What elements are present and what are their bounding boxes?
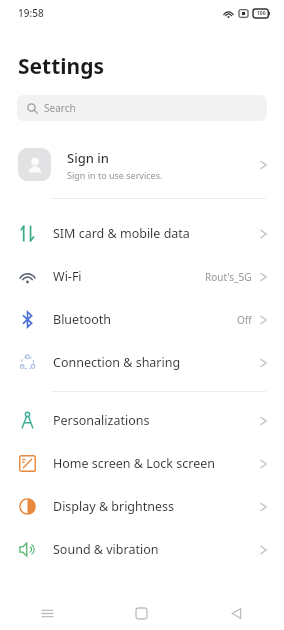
staticText: Personalizations xyxy=(53,412,259,429)
staticText: SIM card & mobile data xyxy=(53,225,259,242)
staticText: 100 xyxy=(257,10,266,17)
button[interactable]: Recent apps xyxy=(0,596,94,630)
staticText: Sound & vibration xyxy=(53,541,259,558)
staticText: Sign in xyxy=(67,149,109,167)
staticText: Wi-Fi xyxy=(53,268,205,285)
button[interactable]: Wi-Fi xyxy=(0,255,284,298)
button[interactable]: Connection & sharing xyxy=(0,341,284,384)
staticText: Bluetooth xyxy=(53,311,237,328)
button[interactable]: Display & brightness xyxy=(0,485,284,528)
staticText: Search xyxy=(44,101,76,115)
button[interactable]: Personalizations xyxy=(0,399,284,442)
button[interactable]: Search xyxy=(17,95,267,121)
staticText: Rout's_5G xyxy=(205,270,252,284)
button[interactable]: Home screen & Lock screen xyxy=(0,442,284,485)
staticText: Home screen & Lock screen xyxy=(53,455,259,472)
button[interactable]: Sign in xyxy=(0,141,284,188)
staticText: Off xyxy=(237,313,252,327)
button[interactable]: Bluetooth xyxy=(0,298,284,341)
staticText: Sign in to use services. xyxy=(67,169,163,181)
button[interactable]: Back xyxy=(189,596,284,630)
button[interactable]: Home xyxy=(94,596,189,630)
button[interactable]: SIM card & mobile data xyxy=(0,212,284,255)
staticText: Display & brightness xyxy=(53,498,259,515)
staticText: 19:58 xyxy=(18,6,44,20)
staticText: Settings xyxy=(18,52,105,81)
button[interactable]: Sound & vibration xyxy=(0,528,284,571)
staticText: Connection & sharing xyxy=(53,354,259,371)
